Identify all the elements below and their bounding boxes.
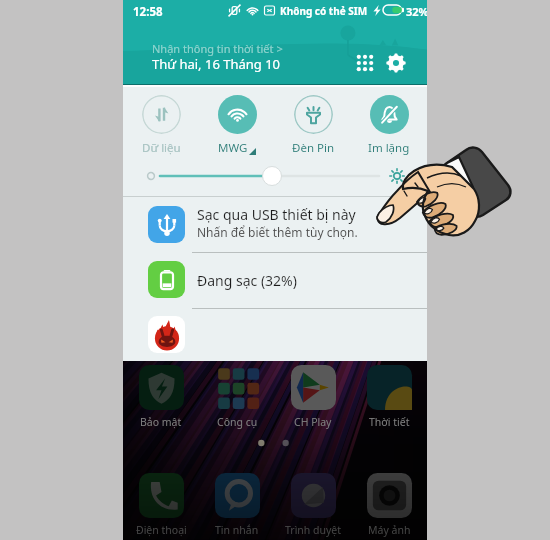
staticText: Đang sạc (32%) xyxy=(197,271,297,290)
staticText: Tin nhắn xyxy=(215,523,259,537)
staticText: MWG xyxy=(218,140,248,156)
staticText: Đèn Pin xyxy=(292,140,335,156)
staticText: Bảo mật xyxy=(140,415,182,429)
staticText: Trình duyệt xyxy=(285,523,342,537)
button[interactable]: Dữ liệu xyxy=(123,95,199,156)
button[interactable]: Máy ảnh xyxy=(351,473,427,537)
staticText: CH Play xyxy=(294,415,332,429)
button[interactable]: MWG xyxy=(199,95,275,156)
staticText: Máy ảnh xyxy=(368,523,411,537)
button[interactable]: Trình duyệt xyxy=(275,473,351,537)
staticText: Im lặng xyxy=(368,140,410,156)
button[interactable]: Tin nhắn xyxy=(199,473,275,537)
button[interactable]: All apps xyxy=(354,52,376,74)
staticText: 32% xyxy=(406,4,427,19)
button[interactable]: CH Play xyxy=(275,365,351,429)
button[interactable]: Đèn Pin xyxy=(275,95,351,156)
staticText: Điện thoại xyxy=(136,523,187,537)
button[interactable]: Đang sạc (32%) xyxy=(123,253,427,308)
staticText: Thời tiết xyxy=(369,415,410,429)
button[interactable]: Thời tiết xyxy=(351,365,427,429)
staticText: Thứ hai, 16 Tháng 10 xyxy=(152,55,281,73)
staticText: Dữ liệu xyxy=(142,140,181,156)
staticText: Nhận thông tin thời tiết > xyxy=(152,41,283,56)
button[interactable] xyxy=(123,309,427,361)
staticText: Sạc qua USB thiết bị này xyxy=(197,205,356,224)
button[interactable]: Settings xyxy=(381,48,411,78)
staticText: 12:58 xyxy=(133,4,163,20)
staticText: Nhấn để biết thêm tùy chọn. xyxy=(197,224,358,240)
staticText: Không có thẻ SIM xyxy=(280,4,368,18)
button[interactable]: Điện thoại xyxy=(123,473,199,537)
button[interactable]: Công cụ xyxy=(199,365,275,429)
button[interactable]: Bảo mật xyxy=(123,365,199,429)
button[interactable]: Sạc qua USB thiết bị này xyxy=(123,197,427,253)
button[interactable]: Im lặng xyxy=(351,95,427,156)
staticText: Công cụ xyxy=(217,415,258,429)
